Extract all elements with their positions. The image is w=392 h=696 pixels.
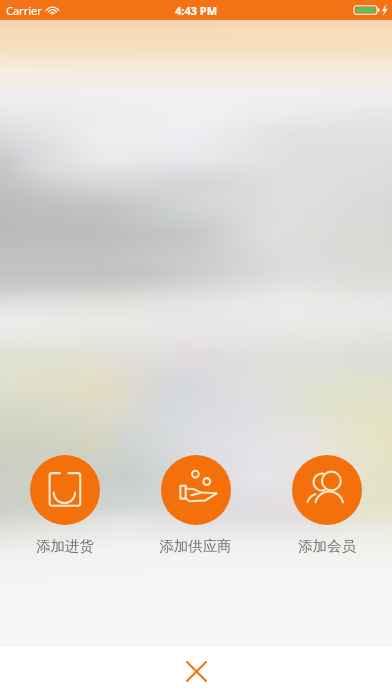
button[interactable]: 添加会员 <box>261 455 392 555</box>
button[interactable]: 添加进货 <box>0 455 130 555</box>
staticText: 添加供应商 <box>159 537 232 555</box>
staticText: 4:43 PM <box>175 3 218 18</box>
button[interactable]: Close <box>0 647 392 696</box>
staticText: 添加会员 <box>298 537 356 555</box>
staticText: Carrier <box>6 3 42 18</box>
staticText: 添加进货 <box>36 537 94 555</box>
button[interactable]: 添加供应商 <box>130 455 261 555</box>
